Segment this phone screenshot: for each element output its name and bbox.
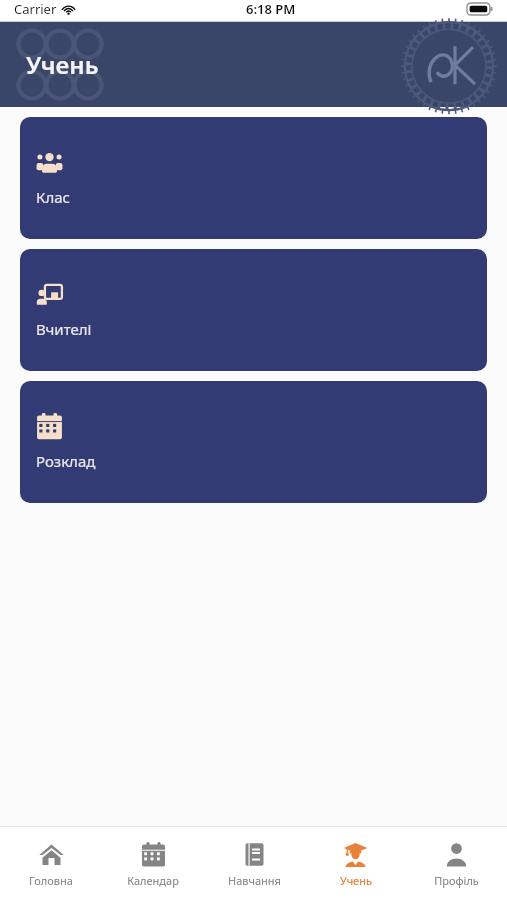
staticText: Календар [127,873,179,888]
button[interactable]: Учень [305,832,406,896]
button[interactable]: Профіль [406,832,507,896]
staticText: 6:18 PM [246,0,296,18]
button[interactable]: Клас [20,117,487,239]
button[interactable]: Навчання [204,832,305,896]
button[interactable]: Календар [102,832,204,896]
staticText: Навчання [228,873,281,888]
staticText: Carrier [14,0,57,18]
staticText: Головна [29,873,73,888]
staticText: Вчителі [36,319,92,339]
button[interactable]: Вчителі [20,249,487,371]
button[interactable]: Головна [0,832,102,896]
staticText: Учень [340,873,372,888]
staticText: Учень [26,48,99,81]
staticText: Розклад [36,451,96,471]
staticText: Клас [36,187,70,207]
staticText: Профіль [434,873,479,888]
button[interactable]: Розклад [20,381,487,503]
